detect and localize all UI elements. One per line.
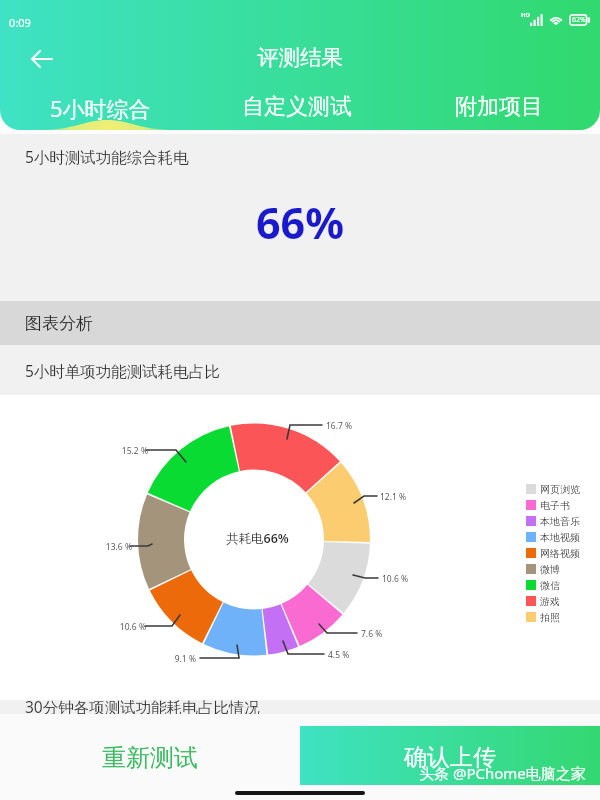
- button[interactable]: 确认上传: [300, 726, 600, 785]
- staticText: 电子书: [540, 499, 570, 512]
- staticText: 66%: [0, 193, 600, 252]
- staticText: 本地音乐: [540, 515, 580, 528]
- staticText: 网页浏览: [540, 483, 580, 496]
- staticText: 5小时测试功能综合耗电: [25, 146, 189, 167]
- staticText: 15.2 %: [121, 445, 148, 457]
- button[interactable]: 附加项目: [451, 91, 547, 123]
- staticText: 拍照: [540, 611, 560, 624]
- staticText: 4.5 %: [328, 649, 350, 661]
- staticText: 图表分析: [25, 313, 93, 334]
- staticText: 本地视频: [540, 531, 580, 544]
- staticText: 网络视频: [540, 547, 580, 560]
- staticText: HD: [521, 11, 530, 19]
- staticText: 头条 @PChome电脑之家: [419, 763, 586, 783]
- staticText: 12.1 %: [380, 491, 407, 503]
- staticText: 微信: [540, 579, 560, 592]
- staticText: 10.6 %: [119, 621, 146, 633]
- staticText: 确认上传: [404, 743, 496, 772]
- staticText: 重新测试: [102, 743, 198, 773]
- button[interactable]: Back: [22, 39, 62, 79]
- staticText: 0:09: [9, 15, 31, 30]
- staticText: 5小时单项功能测试耗电占比: [25, 360, 220, 381]
- staticText: 附加项目: [455, 93, 543, 121]
- staticText: 62%: [572, 15, 586, 25]
- staticText: 自定义测试: [242, 93, 352, 121]
- button[interactable]: 自定义测试: [238, 91, 356, 123]
- staticText: 13.6 %: [105, 541, 132, 553]
- staticText: 7.6 %: [361, 628, 383, 640]
- staticText: 10.6 %: [382, 573, 409, 585]
- staticText: 共耗电66%: [226, 530, 289, 547]
- staticText: 游戏: [540, 595, 560, 608]
- staticText: 评测结果: [257, 44, 343, 71]
- staticText: 微博: [540, 563, 560, 576]
- button[interactable]: 5小时综合: [46, 91, 155, 125]
- staticText: 16.7 %: [326, 420, 353, 432]
- button[interactable]: 重新测试: [0, 726, 300, 785]
- staticText: 5小时综合: [50, 93, 151, 123]
- staticText: 9.1 %: [174, 653, 196, 665]
- staticText: 30分钟各项测试功能耗电占比情况: [25, 696, 260, 717]
